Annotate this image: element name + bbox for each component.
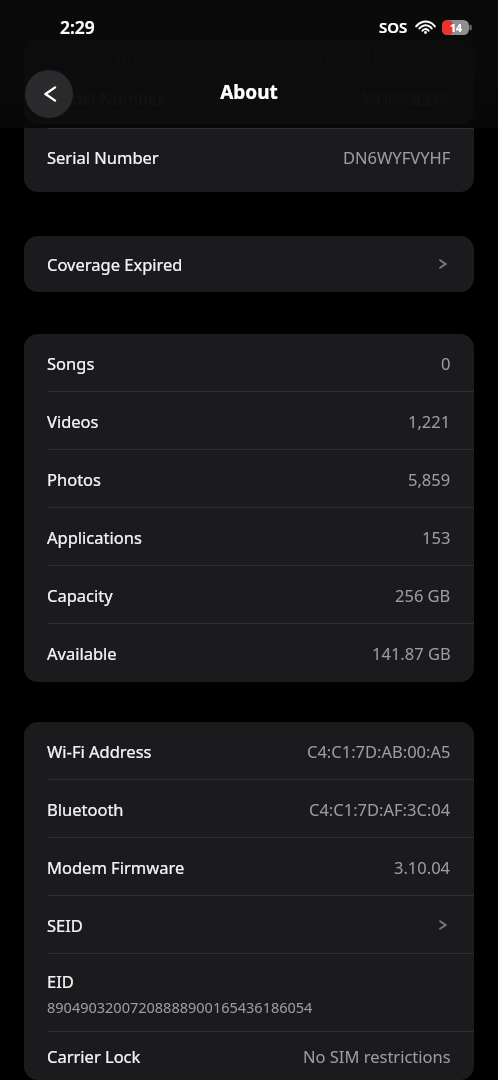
staticText: Bluetooth	[47, 798, 124, 820]
staticText: 2:29	[60, 15, 95, 39]
staticText: 1,221	[408, 410, 451, 432]
staticText: Videos	[47, 410, 99, 432]
staticText: No SIM restrictions	[303, 1045, 451, 1067]
staticText: Photos	[47, 468, 102, 490]
button[interactable]: Capacity	[24, 566, 474, 624]
button[interactable]: Coverage Expired	[24, 236, 474, 292]
button[interactable]: Photos	[24, 450, 474, 508]
staticText: Capacity	[47, 584, 113, 606]
staticText: 89049032007208888900165436186054	[47, 997, 313, 1017]
staticText: 5,859	[408, 468, 451, 490]
staticText: Coverage Expired	[47, 253, 183, 275]
staticText: Carrier Lock	[47, 1045, 141, 1067]
button[interactable]: Videos	[24, 392, 474, 450]
button[interactable]: SEID	[24, 896, 474, 954]
staticText: Songs	[47, 352, 95, 374]
staticText: 141.87 GB	[372, 642, 451, 664]
button[interactable]: Wi-Fi Address	[24, 722, 474, 780]
button[interactable]: Songs	[24, 334, 474, 392]
staticText: Model Number	[47, 87, 165, 109]
staticText: C4:C1:7D:AB:00:A5	[307, 740, 451, 762]
button[interactable]: Available	[24, 624, 474, 682]
staticText: Wi-Fi Address	[47, 740, 152, 762]
button[interactable]: Carrier Lock	[24, 1032, 474, 1080]
staticText: 153	[422, 526, 451, 548]
button[interactable]: Applications	[24, 508, 474, 566]
staticText: 3.10.04	[394, 856, 451, 878]
staticText: About	[220, 79, 278, 105]
staticText: SEID	[47, 914, 83, 936]
staticText: Available	[47, 642, 117, 664]
button[interactable]: Back	[25, 70, 73, 118]
staticText: 0	[441, 352, 451, 374]
button[interactable]: Bluetooth	[24, 780, 474, 838]
staticText: EID	[47, 970, 74, 992]
staticText: Modem Firmware	[47, 856, 185, 878]
staticText: SOS	[379, 17, 408, 37]
button[interactable]: Serial Number	[24, 128, 474, 192]
staticText: Applications	[47, 526, 142, 548]
staticText: DN6WYFVYHF	[343, 146, 451, 168]
button[interactable]: Modem Firmware	[24, 838, 474, 896]
button[interactable]: EID	[24, 954, 474, 1032]
staticText: 14	[450, 21, 463, 35]
staticText: 256 GB	[395, 584, 451, 606]
staticText: C4:C1:7D:AF:3C:04	[309, 798, 451, 820]
staticText: Serial Number	[47, 146, 159, 168]
